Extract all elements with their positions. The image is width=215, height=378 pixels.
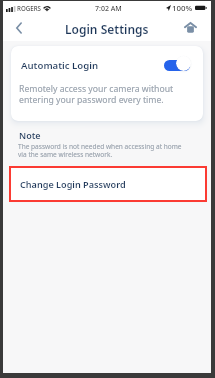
staticText: Remotely access your camera without ente… bbox=[19, 83, 174, 106]
button[interactable]: Home bbox=[179, 16, 201, 39]
staticText: Note bbox=[19, 129, 41, 141]
staticText: The password is not needed when accessin… bbox=[18, 142, 182, 159]
staticText: Change Login Password bbox=[20, 178, 126, 190]
staticText: ROGERS bbox=[17, 4, 42, 12]
button[interactable]: Back bbox=[8, 16, 30, 39]
button[interactable]: Automatic Login toggle bbox=[164, 56, 191, 71]
staticText: 7:02 AM bbox=[95, 4, 122, 14]
staticText: Login Settings bbox=[65, 21, 149, 37]
staticText: Automatic Login bbox=[21, 59, 99, 72]
button[interactable]: Change Login Password bbox=[11, 168, 205, 200]
staticText: 100% bbox=[172, 3, 193, 14]
